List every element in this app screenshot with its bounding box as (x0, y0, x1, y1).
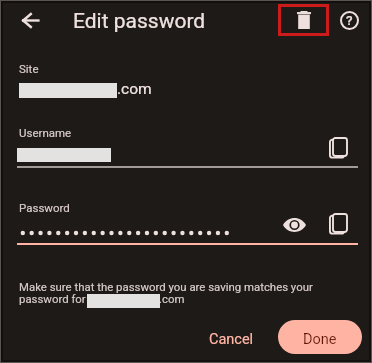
staticText: Site (19, 62, 39, 75)
button[interactable]: Copy password (320, 205, 356, 241)
staticText: Make sure that the password you are savi… (19, 280, 313, 293)
button[interactable]: Done (278, 320, 362, 354)
staticText: Done (303, 331, 337, 348)
staticText: password for (19, 292, 86, 305)
button[interactable]: Delete (278, 4, 329, 36)
staticText: Edit password (73, 9, 206, 34)
button[interactable]: Show password (276, 207, 312, 243)
staticText: Cancel (209, 331, 254, 348)
staticText: Username (19, 126, 72, 139)
staticText: .com (117, 80, 152, 98)
staticText: ? (346, 12, 353, 28)
staticText: .com (159, 292, 185, 305)
button[interactable]: Help (333, 4, 365, 36)
button[interactable]: Copy username (320, 129, 356, 165)
staticText: Password (19, 201, 70, 214)
button[interactable]: Cancel (196, 320, 266, 354)
button[interactable]: Back (11, 1, 49, 39)
